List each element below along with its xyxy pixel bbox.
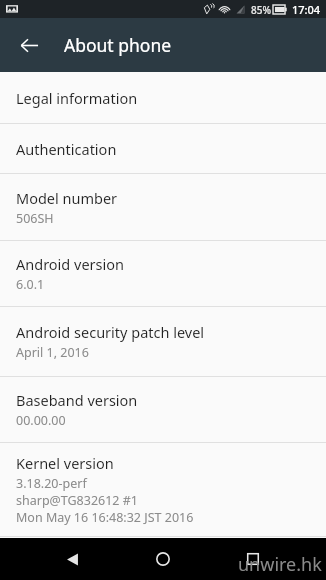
button[interactable]: Kernel version [0, 443, 326, 536]
button[interactable]: Navigate up [12, 28, 46, 62]
staticText: Mon May 16 16:48:32 JST 2016 [16, 509, 194, 526]
button[interactable]: Android security patch level [0, 307, 326, 376]
staticText: sharp@TG832612 #1 [16, 492, 138, 509]
staticText: 3.18.20-perf [16, 475, 87, 492]
staticText: Kernel version [16, 453, 114, 473]
staticText: 17:04 [292, 2, 321, 17]
button[interactable]: Back [55, 542, 89, 576]
staticText: 00.00.00 [16, 412, 66, 429]
button[interactable]: Recent apps [236, 542, 270, 576]
button[interactable]: Authentication [0, 124, 326, 173]
staticText: 506SH [16, 210, 54, 227]
staticText: Model number [16, 188, 118, 208]
staticText: 6.0.1 [16, 276, 45, 293]
staticText: About phone [64, 33, 172, 57]
button[interactable]: Home [146, 542, 180, 576]
staticText: 85% [251, 3, 271, 17]
staticText: unwire.hk [238, 552, 322, 577]
staticText: Authentication [16, 139, 117, 159]
staticText: Android version [16, 254, 124, 274]
staticText: Baseband version [16, 390, 138, 410]
staticText: Legal information [16, 88, 138, 108]
staticText: April 1, 2016 [16, 344, 89, 361]
button[interactable]: Model number [0, 174, 326, 240]
button[interactable]: Android version [0, 241, 326, 306]
staticText: Android security patch level [16, 322, 205, 342]
button[interactable]: Legal information [0, 72, 326, 123]
button[interactable]: Baseband version [0, 377, 326, 442]
